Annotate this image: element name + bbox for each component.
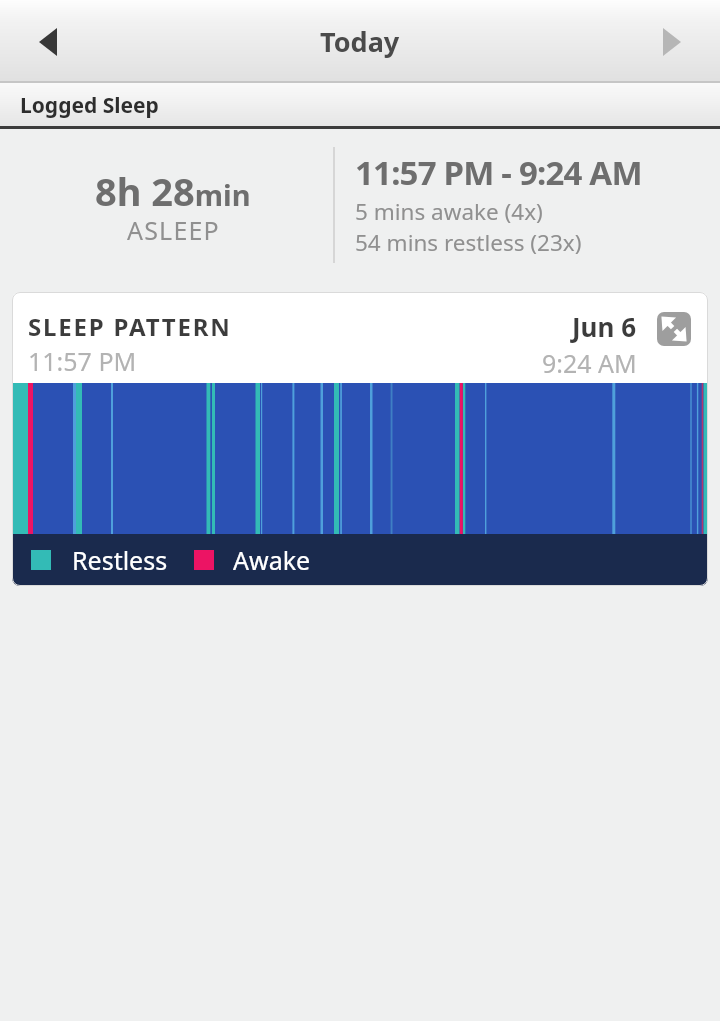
- staticText: Restless: [72, 543, 168, 577]
- staticText: Awake: [233, 543, 311, 577]
- staticText: 5 mins awake (4x) 54 mins restless (23x): [355, 196, 582, 257]
- staticText: 11:57 PM - 9:24 AM: [355, 150, 642, 195]
- staticText: 9:24 AM: [542, 346, 637, 380]
- staticText: Today: [320, 23, 400, 60]
- staticText: Logged Sleep: [20, 91, 159, 120]
- staticText: 11:57 PM: [28, 344, 137, 378]
- button[interactable]: SLEEP PATTERN: [12, 292, 708, 586]
- staticText: Jun 6: [572, 309, 637, 344]
- staticText: ASLEEP: [127, 213, 220, 247]
- button[interactable]: [650, 20, 694, 64]
- button[interactable]: [26, 20, 70, 64]
- staticText: SLEEP PATTERN: [28, 310, 232, 343]
- staticText: 8h 28min: [95, 165, 251, 217]
- button[interactable]: [657, 312, 691, 346]
